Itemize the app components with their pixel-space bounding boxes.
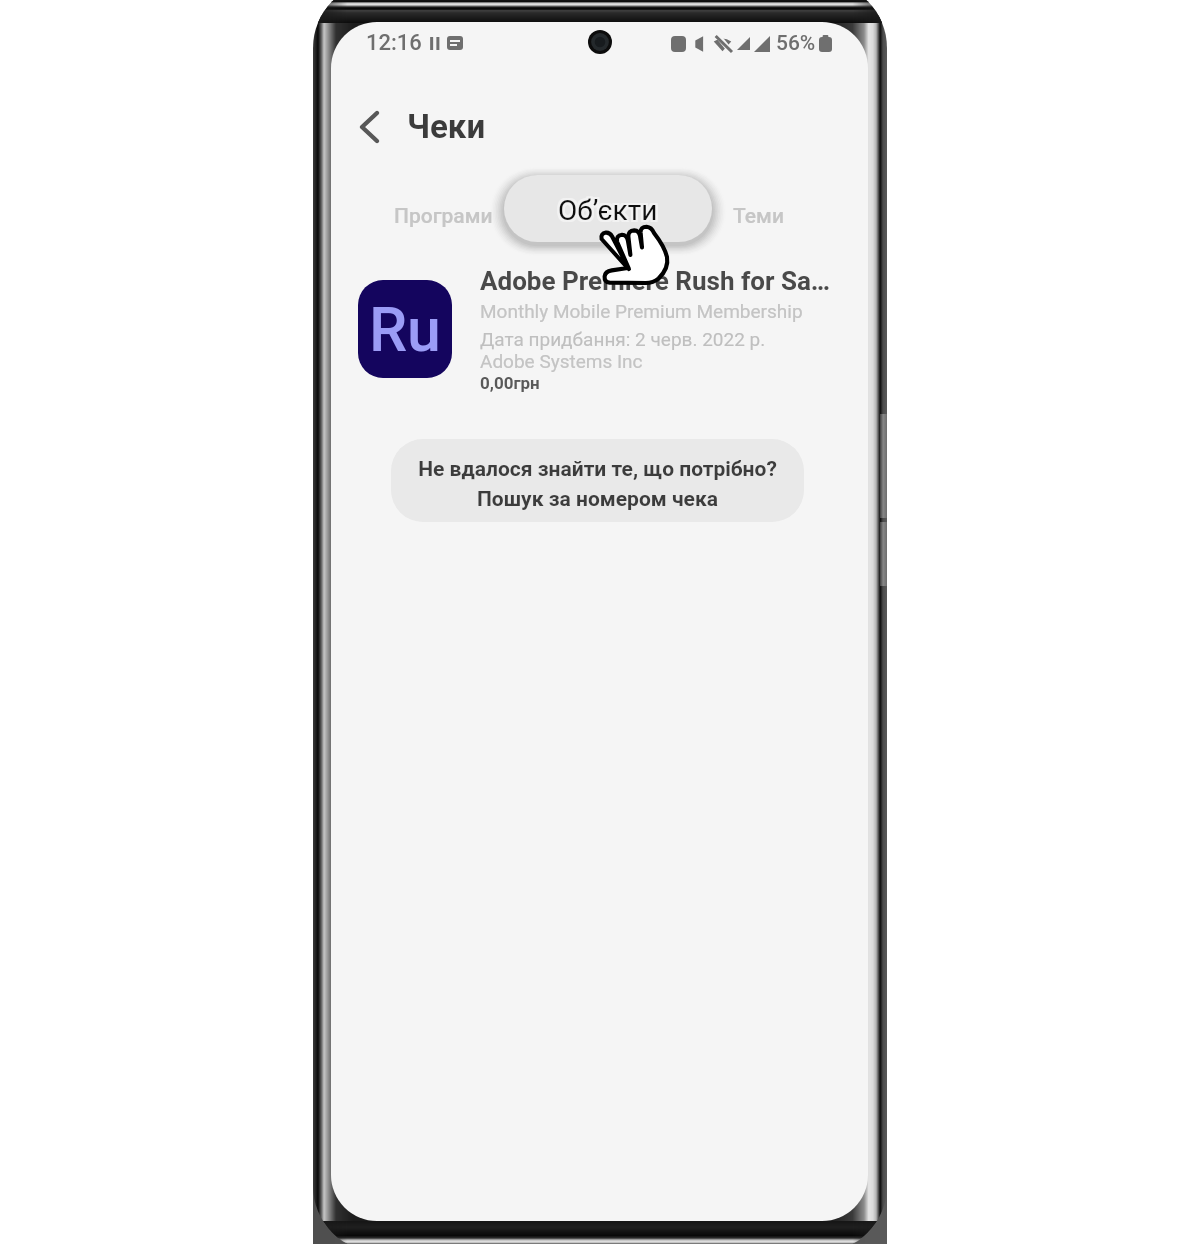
staticText: 12:16 — [366, 30, 422, 56]
staticText: Об’єкти — [560, 194, 660, 227]
staticText: Не вдалося знайти те, що потрібно? Пошук… — [418, 457, 777, 511]
staticText: Програми — [394, 204, 493, 229]
staticText: 56% — [776, 31, 816, 56]
staticText: 0,00грн — [480, 373, 540, 393]
staticText: Ru — [369, 294, 441, 365]
button[interactable]: Не вдалося знайти те, що потрібно? Пошук… — [391, 439, 804, 522]
staticText: Об’єкти — [556, 192, 656, 225]
button[interactable]: Об’єкти — [504, 175, 712, 242]
staticText: Дата придбання: 2 черв. 2022 р. — [480, 328, 766, 350]
staticText: Об’єкти — [556, 196, 656, 229]
button[interactable]: Теми — [729, 198, 788, 235]
button[interactable]: Ru — [358, 280, 452, 378]
staticText: Adobe Systems Inc — [480, 350, 643, 372]
staticText: Об’єкти — [560, 192, 660, 225]
staticText: Теми — [733, 204, 784, 229]
staticText: Об’єкти — [558, 192, 658, 225]
button[interactable]: Back — [348, 100, 390, 154]
staticText: Чеки — [407, 107, 486, 146]
staticText: Monthly Mobile Premium Membership — [480, 300, 803, 322]
button[interactable]: Програми — [390, 198, 497, 235]
staticText: Об’єкти — [556, 194, 656, 227]
staticText: Об’єкти — [560, 196, 660, 229]
staticText: Об’єкти — [558, 196, 658, 229]
staticText: Adobe Premiere Rush for Sa… — [480, 266, 831, 296]
staticText: Об’єкти — [558, 194, 658, 227]
